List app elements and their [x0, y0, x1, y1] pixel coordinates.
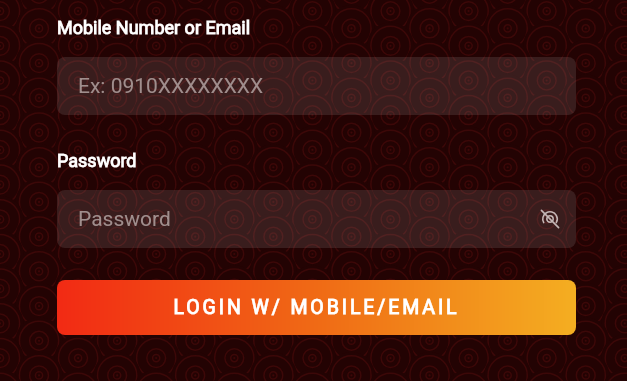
- button[interactable]: LOGIN W/ MOBILE/EMAIL: [57, 280, 576, 335]
- button[interactable]: Show password: [535, 204, 565, 234]
- button[interactable]: Password: [57, 190, 576, 248]
- staticText: LOGIN W/ MOBILE/EMAIL: [173, 296, 460, 319]
- staticText: Password: [57, 150, 137, 171]
- staticText: Ex: 0910XXXXXXXX: [78, 74, 264, 99]
- staticText: Password: [78, 207, 171, 232]
- button[interactable]: Ex: 0910XXXXXXXX: [57, 57, 576, 115]
- staticText: Mobile Number or Email: [57, 17, 251, 38]
